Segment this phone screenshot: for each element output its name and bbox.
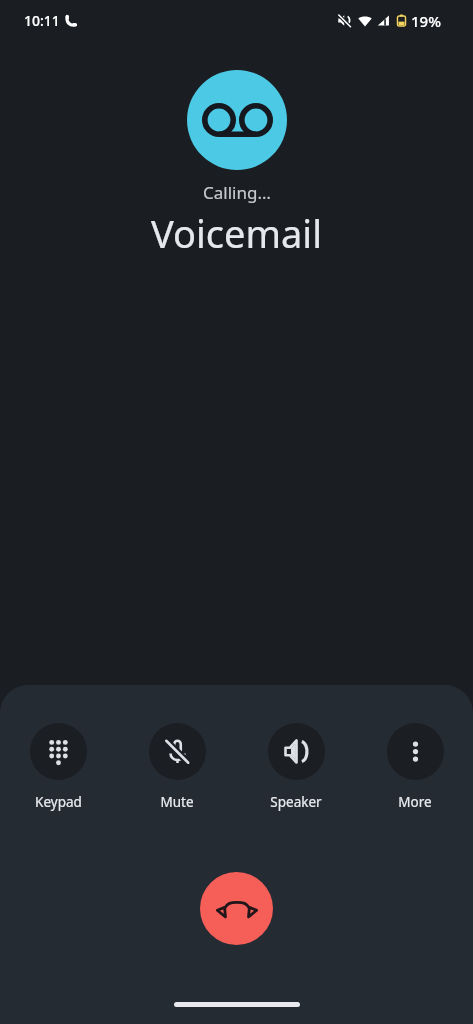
staticText: 19% xyxy=(411,11,441,31)
staticText: Speaker xyxy=(270,793,322,811)
button[interactable]: Mute xyxy=(142,723,212,811)
staticText: Mute xyxy=(160,793,194,811)
button[interactable]: Speaker xyxy=(261,723,331,811)
staticText: 10:11 xyxy=(24,11,60,30)
button[interactable]: More xyxy=(380,723,450,811)
staticText: More xyxy=(398,793,432,811)
button[interactable]: End call xyxy=(200,872,273,945)
staticText: Keypad xyxy=(35,793,82,811)
staticText: Calling… xyxy=(203,181,271,204)
button[interactable]: Keypad xyxy=(23,723,93,811)
staticText: Voicemail xyxy=(151,207,322,259)
